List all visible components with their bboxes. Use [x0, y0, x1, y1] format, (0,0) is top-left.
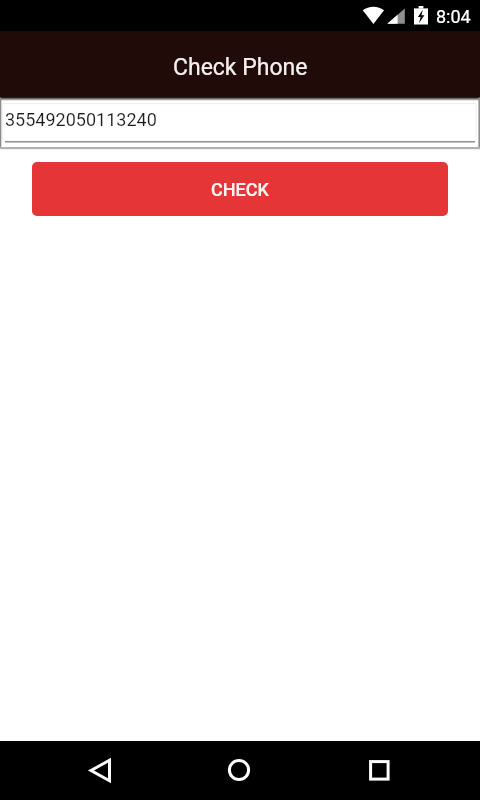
button[interactable]: CHECK — [32, 162, 448, 216]
staticText: 8:04 — [436, 6, 471, 27]
staticText: Check Phone — [173, 54, 308, 81]
staticText: CHECK — [211, 179, 269, 200]
staticText: 355492050113240 — [5, 109, 157, 130]
button[interactable]: Home — [209, 741, 269, 800]
button[interactable]: Back — [70, 741, 130, 800]
button[interactable]: 355492050113240 — [0, 96, 480, 150]
button[interactable]: Recent apps — [350, 741, 410, 800]
